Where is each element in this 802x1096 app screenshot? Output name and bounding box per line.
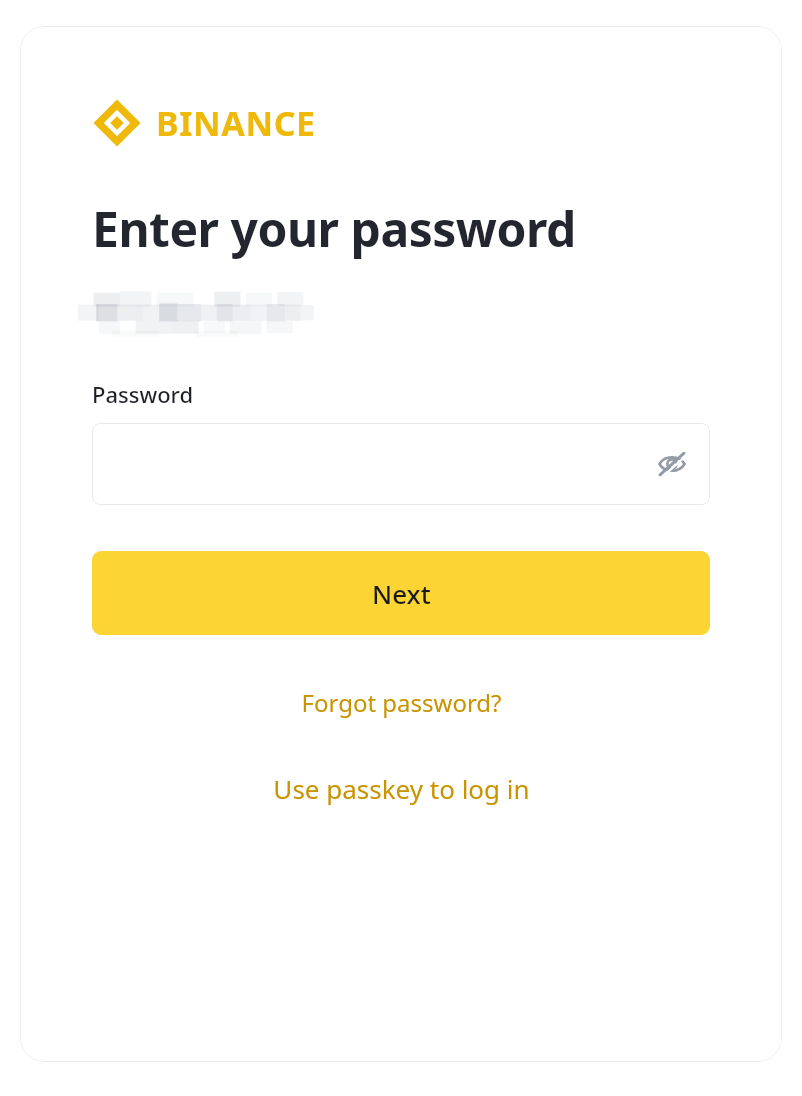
staticText: Next (372, 576, 431, 611)
button[interactable]: Next (92, 551, 710, 635)
staticText: Password (92, 379, 194, 409)
button[interactable]: Show password (92, 423, 710, 505)
staticText: BINANCE (156, 100, 316, 146)
staticText: Forgot password? (301, 686, 502, 719)
button[interactable]: Show password (652, 444, 692, 484)
staticText: Enter your password (92, 196, 576, 261)
staticText: Use passkey to log in (273, 771, 530, 806)
button[interactable]: Forgot password? (92, 679, 710, 725)
button[interactable]: Use passkey to log in (92, 765, 710, 811)
